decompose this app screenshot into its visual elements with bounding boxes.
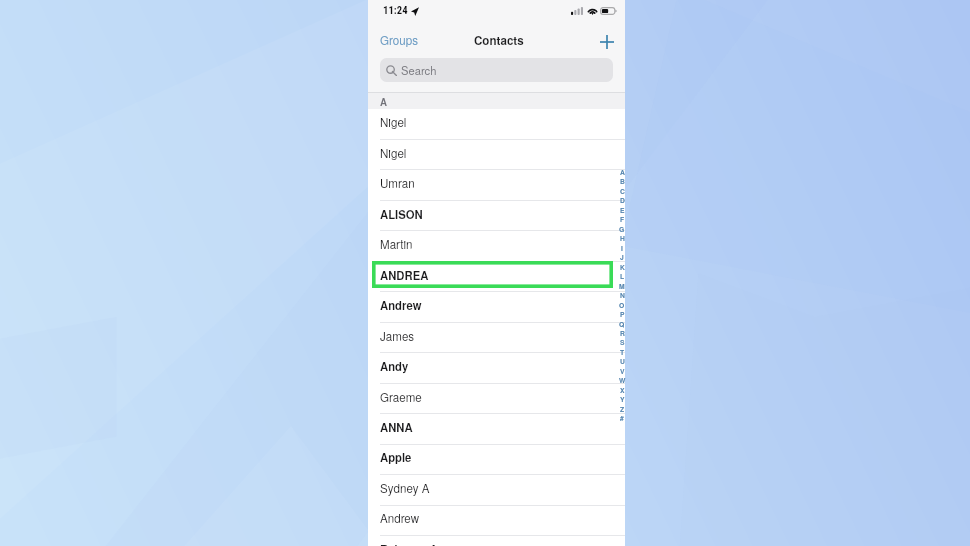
staticText: ANDREA xyxy=(380,267,429,283)
staticText: James xyxy=(380,328,415,345)
staticText: Rebecca Agent xyxy=(380,541,462,546)
button[interactable]: Apple xyxy=(368,444,625,474)
staticText: Contacts xyxy=(474,32,524,49)
staticText: O xyxy=(619,300,625,309)
staticText: ALISON xyxy=(380,206,423,222)
button[interactable]: James xyxy=(368,323,625,353)
button[interactable]: Andrew xyxy=(368,292,625,322)
staticText: G xyxy=(619,224,625,233)
staticText: 11:24 xyxy=(383,4,408,17)
staticText: A xyxy=(620,167,625,176)
staticText: Umran xyxy=(380,175,415,192)
staticText: Z xyxy=(620,404,625,413)
button[interactable]: Search xyxy=(380,58,613,82)
staticText: V xyxy=(620,366,625,375)
staticText: P xyxy=(620,309,625,318)
button[interactable]: Martin xyxy=(368,231,625,261)
button[interactable]: Andy xyxy=(368,353,625,383)
staticText: N xyxy=(620,290,625,299)
button[interactable]: Nigel xyxy=(368,140,625,170)
button[interactable]: Groups xyxy=(377,28,421,53)
button[interactable]: Umran xyxy=(368,170,625,200)
staticText: Y xyxy=(620,394,625,403)
staticText: R xyxy=(620,328,625,337)
button[interactable]: Nigel xyxy=(368,109,625,139)
button[interactable]: Rebecca Agent xyxy=(368,536,625,546)
button[interactable]: ANNA xyxy=(368,414,625,444)
button[interactable]: Sydney A xyxy=(368,475,625,505)
button[interactable]: ALISON xyxy=(368,201,625,231)
staticText: M xyxy=(619,281,625,290)
staticText: H xyxy=(620,233,625,242)
button[interactable]: ANDREA xyxy=(368,262,625,292)
staticText: ANNA xyxy=(380,419,413,435)
staticText: S xyxy=(620,337,625,346)
staticText: Apple xyxy=(380,449,412,465)
staticText: K xyxy=(620,262,625,271)
staticText: Search xyxy=(401,62,437,78)
staticText: J xyxy=(620,252,624,261)
staticText: Andrew xyxy=(380,510,420,527)
staticText: Groups xyxy=(380,32,418,49)
staticText: Nigel xyxy=(380,114,407,131)
button[interactable]: Andrew xyxy=(368,505,625,535)
staticText: L xyxy=(620,271,625,280)
staticText: A xyxy=(380,95,387,109)
button[interactable]: Graeme xyxy=(368,384,625,414)
staticText: Sydney A xyxy=(380,480,430,497)
staticText: E xyxy=(620,205,625,214)
staticText: C xyxy=(620,186,625,195)
staticText: W xyxy=(619,375,626,384)
staticText: Andy xyxy=(380,358,409,374)
button[interactable]: Add contact xyxy=(597,32,617,52)
staticText: # xyxy=(620,413,624,422)
staticText: I xyxy=(621,243,623,252)
staticText: Graeme xyxy=(380,389,422,406)
staticText: Q xyxy=(619,319,625,328)
staticText: X xyxy=(620,385,625,394)
staticText: U xyxy=(620,356,625,365)
staticText: Nigel xyxy=(380,145,407,162)
staticText: Martin xyxy=(380,236,413,253)
staticText: Andrew xyxy=(380,297,422,313)
staticText: F xyxy=(620,214,625,223)
staticText: T xyxy=(620,347,625,356)
staticText: B xyxy=(620,176,625,185)
staticText: D xyxy=(620,195,625,204)
button[interactable]: Alphabet index xyxy=(616,167,628,429)
